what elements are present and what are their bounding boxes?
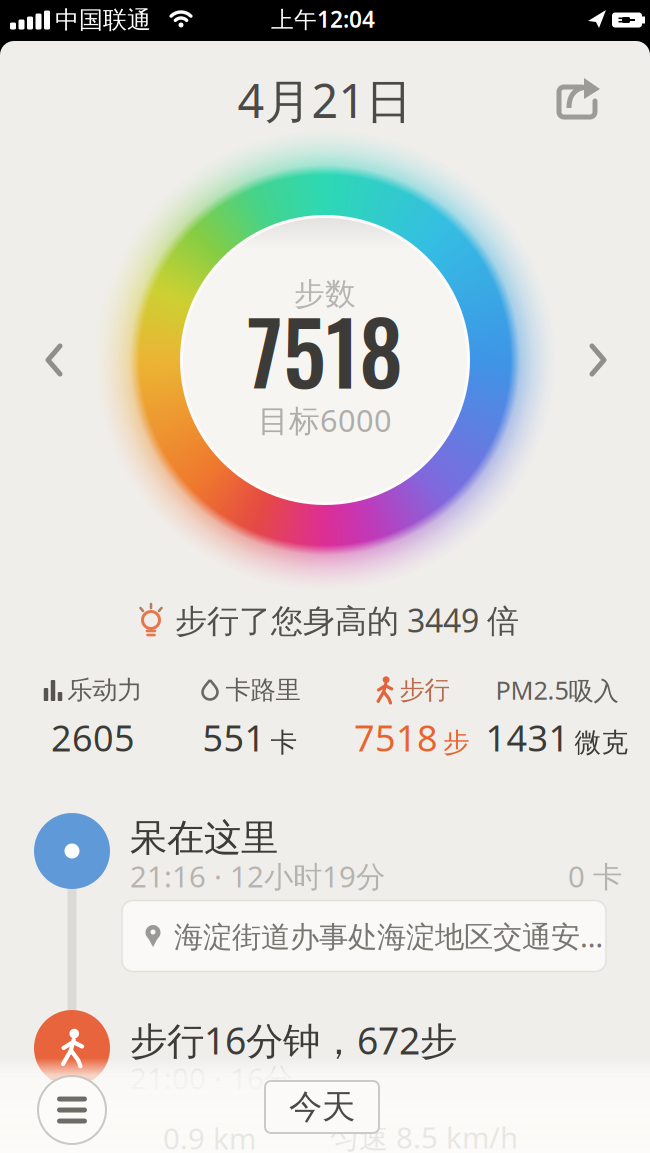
staticText: 微克 bbox=[574, 726, 628, 759]
button[interactable]: 今天 bbox=[265, 1081, 379, 1133]
staticText: 0.9 km bbox=[163, 1118, 256, 1153]
staticText: 乐动力 bbox=[67, 674, 142, 705]
button[interactable]: 卡路里 bbox=[170, 666, 330, 761]
button[interactable]: 乐动力 bbox=[13, 666, 173, 761]
staticText: 4月21日 bbox=[237, 69, 412, 131]
staticText: 21:00 · 16分 bbox=[130, 1058, 293, 1097]
staticText: 目标6000 bbox=[258, 400, 392, 440]
staticText: PM2.5吸入 bbox=[495, 673, 618, 707]
staticText: 卡路里 bbox=[225, 674, 300, 705]
button[interactable]: 呆在这里 bbox=[34, 813, 110, 889]
button[interactable]: 后一天 bbox=[585, 342, 609, 378]
staticText: 匀速 8.5 km/h bbox=[330, 1117, 518, 1153]
staticText: 卡 bbox=[270, 726, 297, 759]
button[interactable]: 步行 bbox=[34, 1010, 110, 1086]
button[interactable]: 步行 bbox=[332, 666, 492, 761]
button[interactable]: PM2.5吸入 bbox=[477, 666, 637, 761]
staticText: 7518 bbox=[247, 285, 403, 413]
staticText: 21:16 · 12小时19分 bbox=[130, 856, 385, 895]
staticText: 今天 bbox=[289, 1086, 355, 1127]
staticText: 步行16分钟，672步 bbox=[130, 1015, 457, 1065]
staticText: 7518 bbox=[354, 714, 438, 761]
button[interactable]: 前一天 bbox=[43, 342, 67, 378]
staticText: 步数 bbox=[294, 275, 356, 313]
button[interactable]: 分享 bbox=[549, 72, 609, 126]
staticText: 步行了您身高的 3449 倍 bbox=[175, 599, 519, 641]
staticText: 步行 bbox=[399, 674, 449, 705]
staticText: 中国联通 bbox=[55, 5, 151, 35]
button[interactable]: 菜单 bbox=[38, 1076, 106, 1144]
button[interactable]: 海淀街道办事处海淀地区交通安… bbox=[122, 900, 606, 971]
staticText: 0 卡 bbox=[568, 856, 622, 895]
staticText: 1431 bbox=[485, 714, 569, 761]
staticText: 2605 bbox=[51, 714, 135, 761]
staticText: 上午12:04 bbox=[271, 4, 375, 34]
staticText: 步 bbox=[443, 726, 470, 759]
staticText: 551 bbox=[202, 714, 265, 761]
staticText: 海淀街道办事处海淀地区交通安… bbox=[174, 916, 603, 955]
staticText: 呆在这里 bbox=[130, 815, 278, 861]
